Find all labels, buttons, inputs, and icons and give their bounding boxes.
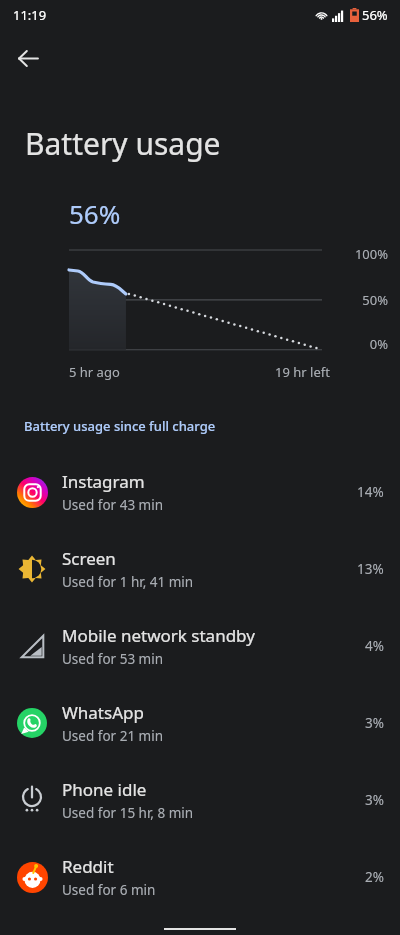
staticText: 5 hr ago (69, 363, 120, 381)
staticText: Instagram (62, 470, 145, 493)
staticText: 19 hr left (275, 363, 330, 381)
staticText: Used for 1 hr, 41 min (62, 573, 194, 591)
staticText: 11:19 (13, 6, 47, 24)
staticText: 2% (365, 868, 384, 886)
staticText: 13% (357, 560, 384, 578)
button[interactable]: Instagram (0, 453, 400, 530)
button[interactable]: Phone idle (0, 761, 400, 838)
staticText: 50% (362, 291, 388, 309)
staticText: 3% (365, 791, 384, 809)
staticText: Used for 21 min (62, 727, 164, 745)
staticText: Used for 53 min (62, 650, 164, 668)
button[interactable]: Back (9, 39, 47, 77)
staticText: 100% (354, 245, 388, 263)
staticText: Reddit (62, 855, 114, 878)
staticText: 3% (365, 714, 384, 732)
staticText: Screen (62, 547, 116, 570)
staticText: 56% (362, 6, 388, 24)
staticText: Used for 43 min (62, 496, 164, 514)
staticText: Phone idle (62, 778, 147, 801)
staticText: Battery usage since full charge (24, 417, 216, 435)
staticText: WhatsApp (62, 701, 144, 724)
staticText: Mobile network standby (62, 624, 255, 647)
staticText: Battery usage (25, 123, 221, 164)
button[interactable]: Reddit (0, 838, 400, 915)
button[interactable]: WhatsApp (0, 684, 400, 761)
button[interactable]: Screen (0, 530, 400, 607)
staticText: Used for 6 min (62, 881, 156, 899)
staticText: 4% (365, 637, 384, 655)
staticText: Used for 15 hr, 8 min (62, 804, 194, 822)
staticText: 0% (369, 335, 388, 353)
staticText: 14% (357, 483, 384, 501)
button[interactable]: Mobile network standby (0, 607, 400, 684)
staticText: 56% (69, 196, 121, 231)
